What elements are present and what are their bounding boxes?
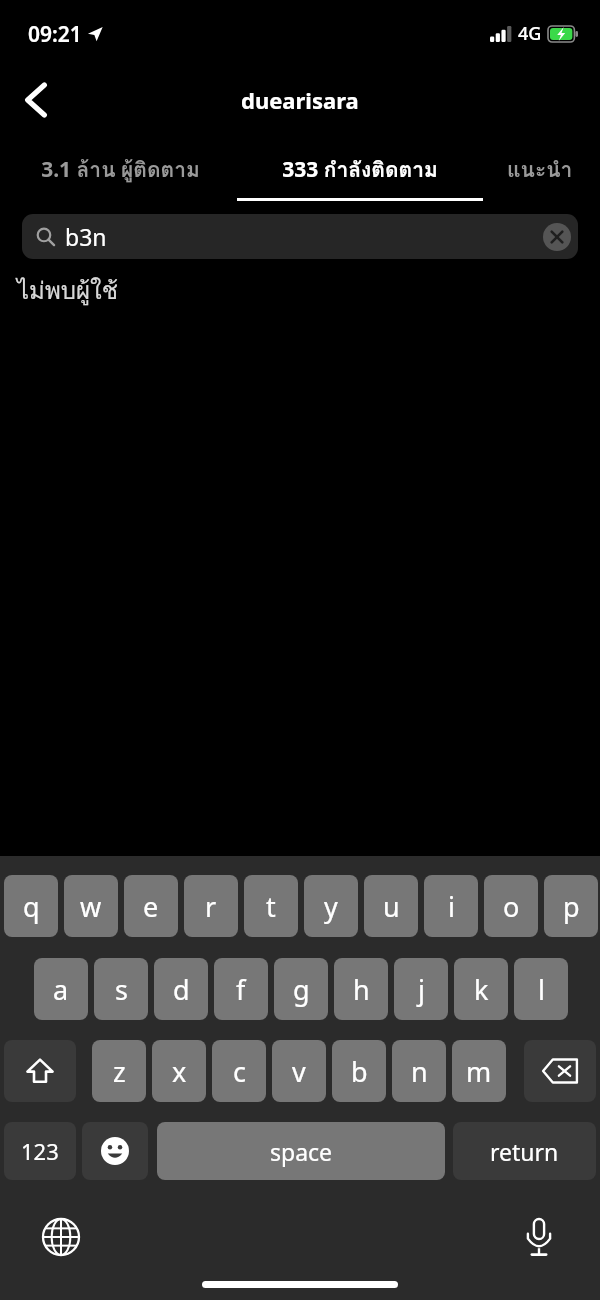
button[interactable]: Clear: [536, 216, 578, 258]
staticText: s: [115, 971, 128, 1008]
staticText: a: [53, 971, 69, 1008]
button[interactable]: z: [92, 1040, 146, 1102]
button[interactable]: 333 กำลังติดตาม: [240, 138, 480, 201]
button[interactable]: j: [394, 958, 448, 1020]
staticText: ไม่พบผู้ใช้: [17, 271, 119, 309]
staticText: b: [351, 1053, 368, 1090]
button[interactable]: 3.1 ล้าน ผู้ติดตาม: [0, 138, 240, 201]
button[interactable]: a: [34, 958, 88, 1020]
staticText: j: [418, 971, 425, 1008]
button[interactable]: b: [332, 1040, 386, 1102]
staticText: e: [143, 888, 159, 925]
button[interactable]: c: [212, 1040, 266, 1102]
staticText: y: [324, 888, 338, 925]
button[interactable]: t: [244, 875, 298, 937]
staticText: d: [173, 971, 190, 1008]
staticText: b3n: [65, 221, 107, 252]
button[interactable]: i: [424, 875, 478, 937]
staticText: q: [23, 888, 40, 925]
button[interactable]: w: [64, 875, 118, 937]
staticText: g: [293, 971, 310, 1008]
staticText: 123: [21, 1136, 59, 1166]
button[interactable]: f: [214, 958, 268, 1020]
staticText: 3.1 ล้าน ผู้ติดตาม: [41, 153, 200, 186]
staticText: v: [292, 1053, 306, 1090]
staticText: x: [172, 1053, 187, 1090]
staticText: i: [448, 888, 455, 925]
staticText: duearisara: [241, 85, 359, 115]
button[interactable]: 123: [4, 1122, 76, 1180]
button[interactable]: Voice input: [508, 1206, 570, 1268]
button[interactable]: u: [364, 875, 418, 937]
button[interactable]: Backspace: [524, 1040, 596, 1102]
staticText: 4G: [518, 21, 542, 46]
staticText: 09:21: [28, 20, 82, 49]
button[interactable]: k: [454, 958, 508, 1020]
button[interactable]: n: [392, 1040, 446, 1102]
staticText: z: [113, 1053, 126, 1090]
button[interactable]: v: [272, 1040, 326, 1102]
staticText: r: [205, 888, 217, 925]
staticText: p: [563, 888, 580, 925]
button[interactable]: y: [304, 875, 358, 937]
staticText: w: [80, 888, 102, 925]
button[interactable]: return: [453, 1122, 596, 1180]
staticText: u: [383, 888, 400, 925]
button[interactable]: r: [184, 875, 238, 937]
staticText: แนะนำ: [507, 153, 573, 186]
staticText: return: [490, 1136, 559, 1167]
button[interactable]: Back: [0, 69, 72, 131]
button[interactable]: h: [334, 958, 388, 1020]
button[interactable]: l: [514, 958, 568, 1020]
staticText: h: [353, 971, 370, 1008]
staticText: n: [411, 1053, 428, 1090]
button[interactable]: m: [452, 1040, 506, 1102]
staticText: m: [466, 1053, 492, 1090]
staticText: space: [270, 1136, 333, 1167]
button[interactable]: d: [154, 958, 208, 1020]
staticText: o: [503, 888, 520, 925]
staticText: l: [538, 971, 545, 1008]
button[interactable]: g: [274, 958, 328, 1020]
button[interactable]: Change keyboard: [30, 1206, 92, 1268]
button[interactable]: q: [4, 875, 58, 937]
button[interactable]: o: [484, 875, 538, 937]
staticText: t: [266, 888, 276, 925]
button[interactable]: e: [124, 875, 178, 937]
button[interactable]: space: [157, 1122, 445, 1180]
button[interactable]: Shift: [4, 1040, 76, 1102]
button[interactable]: Emoji: [82, 1122, 148, 1180]
button[interactable]: แนะนำ: [480, 138, 600, 201]
button[interactable]: b3n: [22, 214, 578, 259]
button[interactable]: s: [94, 958, 148, 1020]
staticText: c: [233, 1053, 246, 1090]
button[interactable]: x: [152, 1040, 206, 1102]
staticText: f: [236, 971, 246, 1008]
button[interactable]: p: [544, 875, 598, 937]
staticText: k: [474, 971, 489, 1008]
staticText: 333 กำลังติดตาม: [282, 153, 438, 186]
